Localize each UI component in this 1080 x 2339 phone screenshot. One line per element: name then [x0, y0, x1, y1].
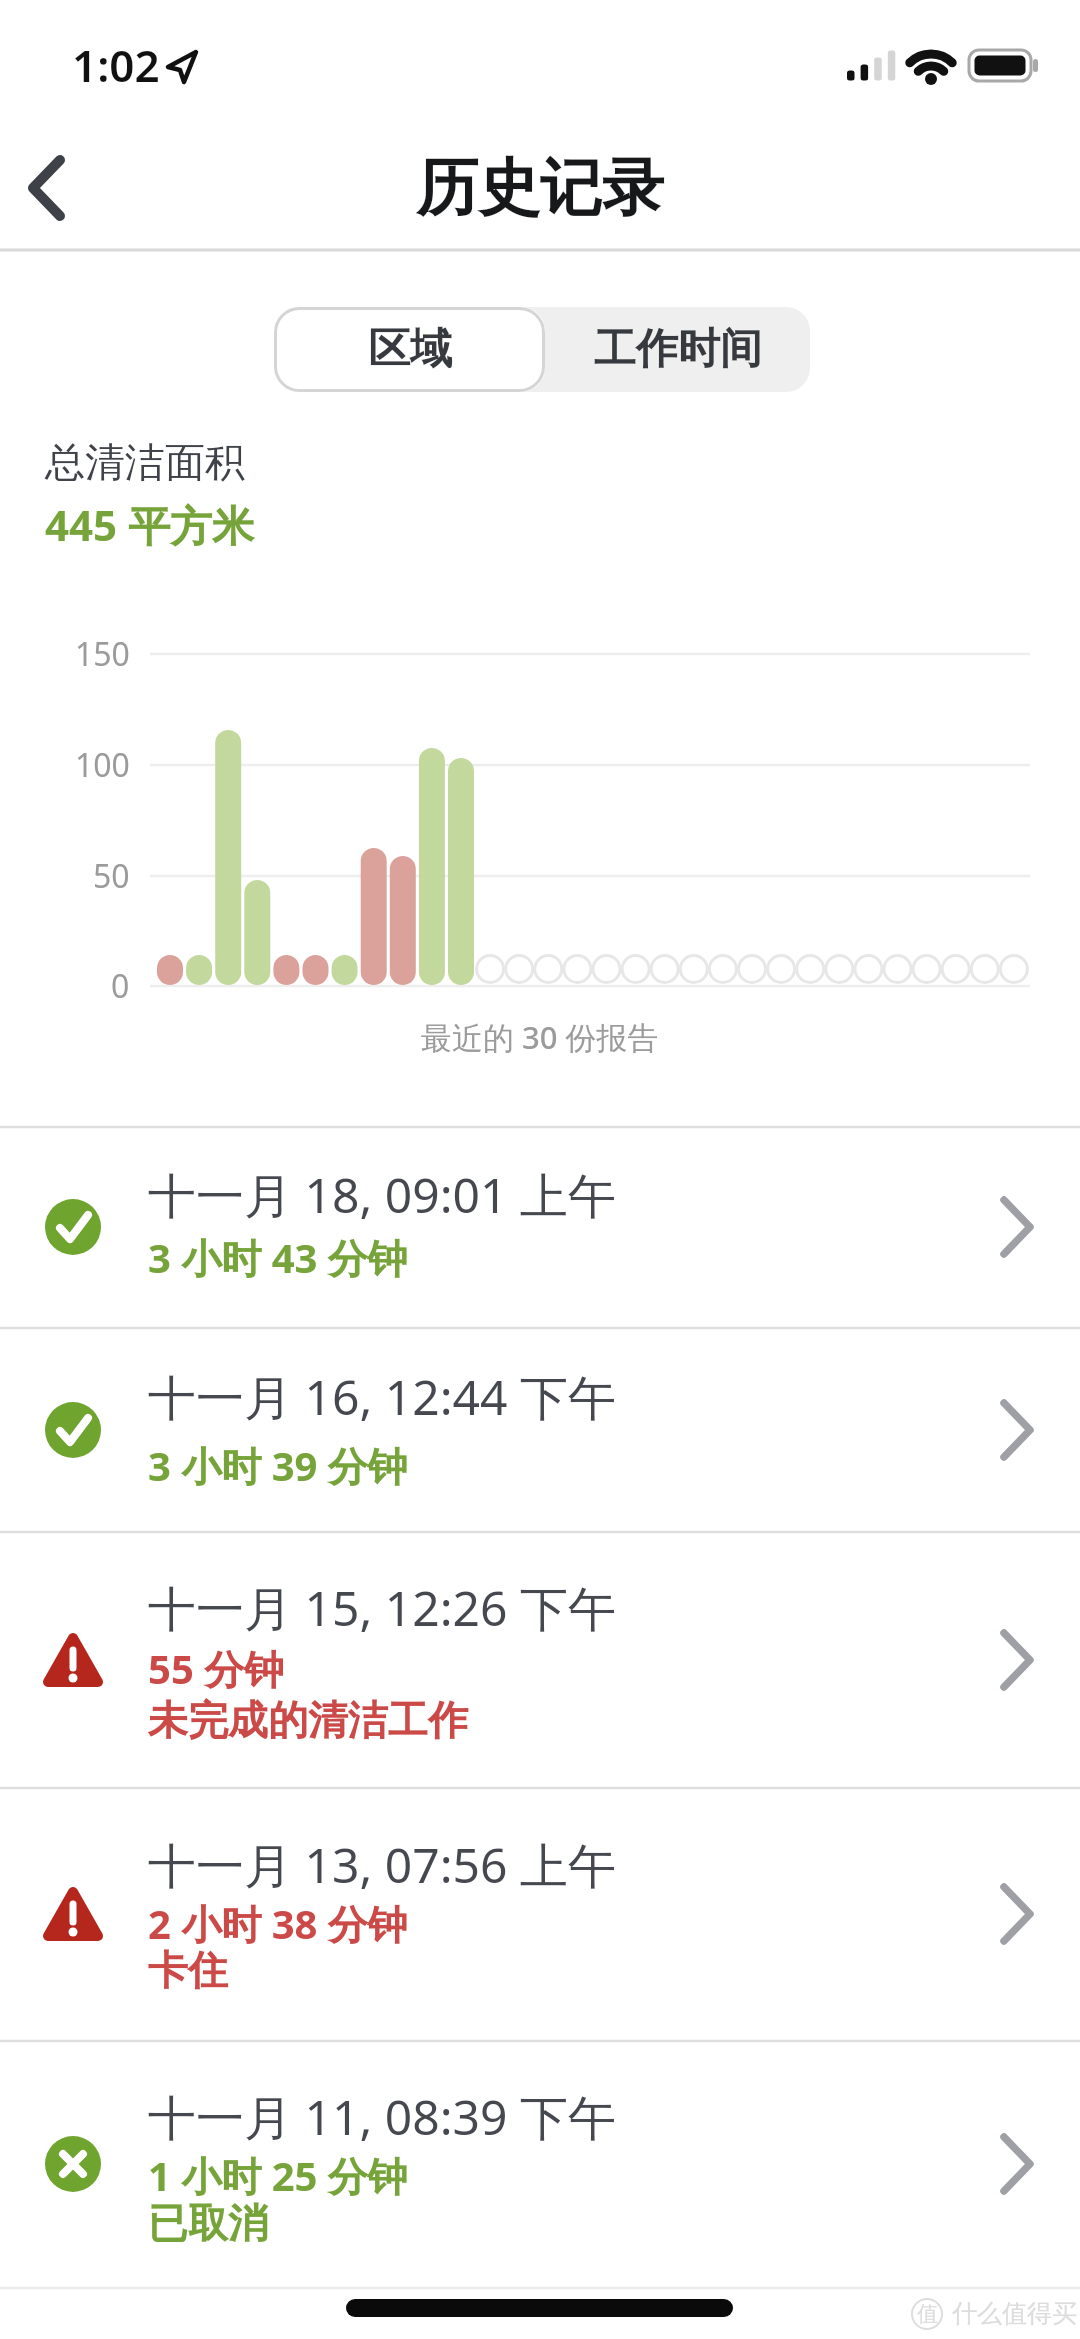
- staticText: 卡住: [148, 1945, 228, 1995]
- staticText: 什么值得买: [952, 2298, 1077, 2329]
- staticText: 工作时间: [594, 323, 762, 376]
- staticText: 十一月 16, 12:44 下午: [148, 1364, 616, 1430]
- staticText: 0: [111, 964, 130, 1008]
- staticText: 2 小时 38 分钟: [148, 1896, 408, 1951]
- staticText: 总清洁面积: [45, 437, 245, 487]
- button[interactable]: 十一月 18, 09:01 上午: [0, 1127, 1080, 1328]
- button[interactable]: 工作时间: [545, 307, 810, 392]
- button[interactable]: [10, 145, 100, 235]
- button[interactable]: 十一月 13, 07:56 上午: [0, 1788, 1080, 2041]
- staticText: 历史记录: [416, 149, 664, 227]
- staticText: 区域: [368, 323, 452, 376]
- staticText: 55 分钟: [148, 1641, 285, 1696]
- staticText: 未完成的清洁工作: [148, 1695, 468, 1745]
- staticText: 十一月 15, 12:26 下午: [148, 1575, 616, 1641]
- staticText: 3 小时 39 分钟: [148, 1438, 408, 1493]
- staticText: 100: [75, 743, 130, 787]
- staticText: 十一月 18, 09:01 上午: [148, 1162, 616, 1228]
- staticText: 已取消: [148, 2198, 268, 2248]
- staticText: 50: [93, 854, 130, 898]
- staticText: 1 小时 25 分钟: [148, 2148, 408, 2203]
- staticText: 150: [75, 632, 130, 676]
- button[interactable]: 十一月 11, 08:39 下午: [0, 2041, 1080, 2287]
- staticText: 最近的 30 份报告: [421, 1016, 659, 1058]
- staticText: 445 平方米: [45, 496, 254, 553]
- staticText: 十一月 13, 07:56 上午: [148, 1832, 616, 1898]
- button[interactable]: 十一月 16, 12:44 下午: [0, 1328, 1080, 1532]
- staticText: 十一月 11, 08:39 下午: [148, 2084, 616, 2150]
- button[interactable]: 十一月 15, 12:26 下午: [0, 1532, 1080, 1788]
- staticText: 1:02: [72, 35, 160, 95]
- button[interactable]: 区域: [274, 307, 545, 392]
- staticText: 值: [917, 2301, 938, 2327]
- staticText: 3 小时 43 分钟: [148, 1230, 408, 1285]
